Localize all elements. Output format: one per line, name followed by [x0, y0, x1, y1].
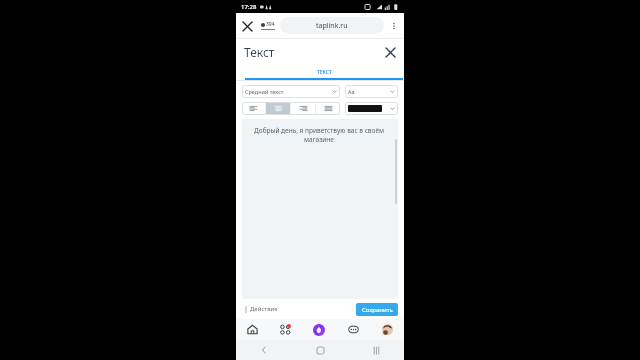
- button[interactable]: More options: [384, 16, 404, 36]
- button[interactable]: ТЕКСТ: [244, 69, 404, 80]
- staticText: Средний текст: [245, 88, 284, 95]
- staticText: 17:28: [241, 3, 257, 11]
- button[interactable]: Profile: [370, 319, 404, 340]
- staticText: Текст: [244, 44, 275, 60]
- staticText: 394: [266, 21, 275, 28]
- button[interactable]: Средний текст: [242, 85, 340, 98]
- button[interactable]: Home: [236, 319, 269, 340]
- button[interactable]: Text color: [345, 102, 398, 115]
- staticText: ТЕКСТ: [317, 69, 332, 76]
- staticText: Сохранить: [362, 306, 393, 314]
- button[interactable]: Действие: [242, 303, 280, 315]
- button[interactable]: Justify: [316, 102, 340, 115]
- button[interactable]: taplink.ru: [280, 17, 384, 34]
- button[interactable]: Recent apps: [348, 340, 404, 360]
- staticText: taplink.ru: [316, 21, 348, 31]
- button[interactable]: Close panel: [380, 42, 400, 62]
- button[interactable]: Align right: [291, 102, 315, 115]
- button[interactable]: Home: [292, 340, 348, 360]
- button[interactable]: Dialogs: [336, 319, 370, 340]
- button[interactable]: Align left: [242, 102, 265, 115]
- button[interactable]: Close: [236, 15, 258, 37]
- button[interactable]: Align center: [266, 102, 290, 115]
- button[interactable]: Добрый день, я приветствую вас в своём м…: [242, 119, 398, 299]
- button[interactable]: Assistant: [302, 319, 336, 340]
- staticText: Аа: [348, 88, 355, 95]
- staticText: Добрый день, я приветствую вас в своём м…: [250, 126, 388, 144]
- staticText: Действие: [250, 305, 278, 313]
- button[interactable]: Аа: [345, 85, 398, 98]
- button[interactable]: Back: [236, 340, 292, 360]
- button[interactable]: Services: [269, 319, 302, 340]
- button[interactable]: Сохранить: [356, 303, 398, 316]
- button[interactable]: Tabs: [259, 18, 277, 33]
